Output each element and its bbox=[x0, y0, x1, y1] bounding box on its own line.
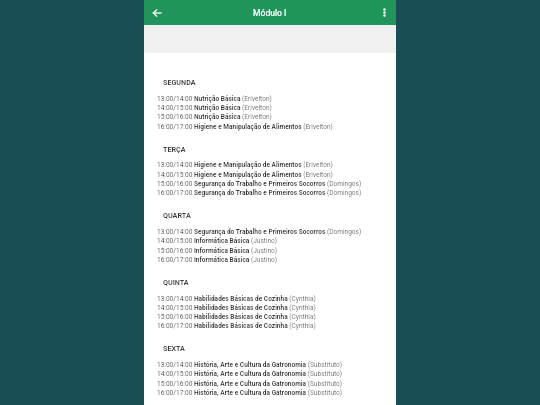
staticText: 16:00/17:00 Informática Básica (Justino) bbox=[157, 256, 278, 264]
button[interactable]: 14:00/15:00 Nutrição Básica (Erivelton) bbox=[144, 104, 396, 113]
staticText: 15:00/16:00 Informática Básica (Justino) bbox=[157, 247, 278, 255]
staticText: 15:00/16:00 História, Arte e Cultura da … bbox=[157, 380, 343, 388]
button[interactable]: 14:00/15:00 Informática Básica (Justino) bbox=[144, 237, 396, 246]
staticText: 13:00/14:00 Nutrição Básica (Erivelton) bbox=[157, 95, 272, 103]
staticText: TERÇA bbox=[163, 145, 186, 153]
staticText: 15:00/16:00 Nutrição Básica (Erivelton) bbox=[157, 113, 272, 121]
button[interactable]: 14:00/15:00 Habilidades Básicas de Cozin… bbox=[144, 304, 396, 313]
button[interactable]: 13:00/14:00 Higiene e Manipulação de Ali… bbox=[144, 161, 396, 170]
staticText: 13:00/14:00 Segurança do Trabalho e Prim… bbox=[157, 228, 362, 236]
button[interactable]: 14:00/15:00 História, Arte e Cultura da … bbox=[144, 370, 396, 379]
staticText: 14:00/15:00 História, Arte e Cultura da … bbox=[157, 370, 343, 378]
button[interactable]: 13:00/14:00 História, Arte e Cultura da … bbox=[144, 361, 396, 370]
staticText: SEGUNDA bbox=[163, 78, 196, 86]
staticText: 14:00/15:00 Nutrição Básica (Erivelton) bbox=[157, 104, 272, 112]
staticText: 14:00/15:00 Informática Básica (Justino) bbox=[157, 237, 278, 245]
staticText: Módulo I bbox=[253, 8, 287, 18]
staticText: 13:00/14:00 Habilidades Básicas de Cozin… bbox=[157, 295, 316, 303]
staticText: 16:00/17:00 Segurança do Trabalho e Prim… bbox=[157, 189, 362, 197]
staticText: 14:00/15:00 Habilidades Básicas de Cozin… bbox=[157, 304, 316, 312]
button[interactable]: 13:00/14:00 Habilidades Básicas de Cozin… bbox=[144, 295, 396, 304]
button[interactable]: 15:00/16:00 História, Arte e Cultura da … bbox=[144, 380, 396, 389]
staticText: SEXTA bbox=[163, 344, 185, 352]
button[interactable]: 16:00/17:00 História, Arte e Cultura da … bbox=[144, 389, 396, 398]
staticText: 16:00/17:00 Habilidades Básicas de Cozin… bbox=[157, 322, 316, 330]
button[interactable]: 16:00/17:00 Higiene e Manipulação de Ali… bbox=[144, 123, 396, 132]
button[interactable]: 15:00/16:00 Nutrição Básica (Erivelton) bbox=[144, 113, 396, 122]
button[interactable]: Back bbox=[148, 4, 165, 21]
button[interactable]: 15:00/16:00 Informática Básica (Justino) bbox=[144, 247, 396, 256]
button[interactable]: More options bbox=[376, 4, 393, 21]
staticText: QUINTA bbox=[163, 278, 189, 286]
staticText: 13:00/14:00 Higiene e Manipulação de Ali… bbox=[157, 161, 333, 169]
staticText: 15:00/16:00 Habilidades Básicas de Cozin… bbox=[157, 313, 316, 321]
button[interactable]: 16:00/17:00 Habilidades Básicas de Cozin… bbox=[144, 322, 396, 331]
staticText: 15:00/16:00 Segurança do Trabalho e Prim… bbox=[157, 180, 362, 188]
staticText: 16:00/17:00 História, Arte e Cultura da … bbox=[157, 389, 343, 397]
staticText: 16:00/17:00 Higiene e Manipulação de Ali… bbox=[157, 123, 333, 131]
button[interactable]: 16:00/17:00 Segurança do Trabalho e Prim… bbox=[144, 189, 396, 198]
staticText: 13:00/14:00 História, Arte e Cultura da … bbox=[157, 361, 343, 369]
button[interactable]: 15:00/16:00 Habilidades Básicas de Cozin… bbox=[144, 313, 396, 322]
button[interactable]: 15:00/16:00 Segurança do Trabalho e Prim… bbox=[144, 180, 396, 189]
button[interactable]: 14:00/15:00 Higiene e Manipulação de Ali… bbox=[144, 171, 396, 180]
staticText: QUARTA bbox=[163, 211, 191, 219]
button[interactable]: 13:00/14:00 Nutrição Básica (Erivelton) bbox=[144, 95, 396, 104]
button[interactable]: 13:00/14:00 Segurança do Trabalho e Prim… bbox=[144, 228, 396, 237]
button[interactable]: 16:00/17:00 Informática Básica (Justino) bbox=[144, 256, 396, 265]
staticText: 14:00/15:00 Higiene e Manipulação de Ali… bbox=[157, 171, 333, 179]
